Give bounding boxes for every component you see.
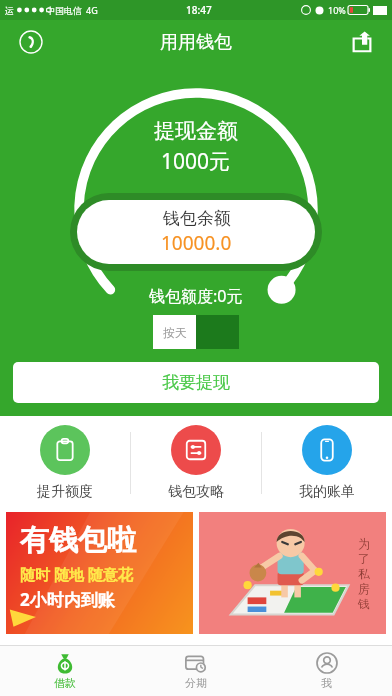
staticText: 2小时内到账 bbox=[20, 588, 115, 611]
staticText: 房 bbox=[358, 581, 370, 596]
staticText: 钱包攻略 bbox=[168, 483, 224, 501]
staticText: 借款 bbox=[54, 676, 76, 690]
button[interactable]: 借款 bbox=[0, 646, 130, 696]
staticText: 了 bbox=[358, 551, 370, 566]
staticText: 按天 bbox=[163, 325, 187, 340]
staticText: 钱 bbox=[358, 596, 370, 611]
staticText: 私 bbox=[358, 566, 370, 581]
button[interactable]: Call bbox=[14, 25, 48, 59]
button[interactable]: 有钱包啦 bbox=[6, 512, 193, 634]
staticText: 4G bbox=[86, 4, 98, 16]
staticText: 10% bbox=[328, 4, 346, 16]
button[interactable]: 分期 bbox=[130, 646, 261, 696]
staticText: 有钱包啦 bbox=[20, 522, 136, 559]
staticText: 我的账单 bbox=[299, 483, 355, 501]
button[interactable]: 为 bbox=[199, 512, 386, 634]
button[interactable]: 钱包余额 bbox=[77, 200, 315, 264]
staticText: 我 bbox=[321, 676, 332, 690]
button[interactable]: 我的账单 bbox=[262, 416, 392, 510]
staticText: 提现金额 bbox=[154, 118, 238, 144]
staticText: 随时 随地 随意花 bbox=[20, 564, 133, 584]
button[interactable]: 我 bbox=[261, 646, 392, 696]
staticText: 10000.0 bbox=[161, 230, 232, 256]
staticText: 为 bbox=[358, 536, 370, 551]
staticText: 分期 bbox=[185, 676, 207, 690]
staticText: 中国电信 bbox=[46, 5, 82, 16]
staticText: 用用钱包 bbox=[160, 31, 232, 54]
staticText: 钱包额度:0元 bbox=[149, 285, 243, 307]
button[interactable]: Share bbox=[344, 24, 380, 60]
staticText: 运 bbox=[5, 5, 14, 16]
button[interactable]: 按天 bbox=[153, 315, 239, 349]
staticText: 1000元 bbox=[161, 147, 231, 176]
button[interactable]: 我要提现 bbox=[13, 362, 379, 403]
staticText: 我要提现 bbox=[162, 372, 230, 393]
staticText: 钱包余额 bbox=[163, 208, 231, 229]
button[interactable]: 提升额度 bbox=[0, 416, 130, 510]
button[interactable]: 钱包攻略 bbox=[131, 416, 261, 510]
staticText: 提升额度 bbox=[37, 483, 93, 501]
staticText: 18:47 bbox=[186, 3, 212, 17]
